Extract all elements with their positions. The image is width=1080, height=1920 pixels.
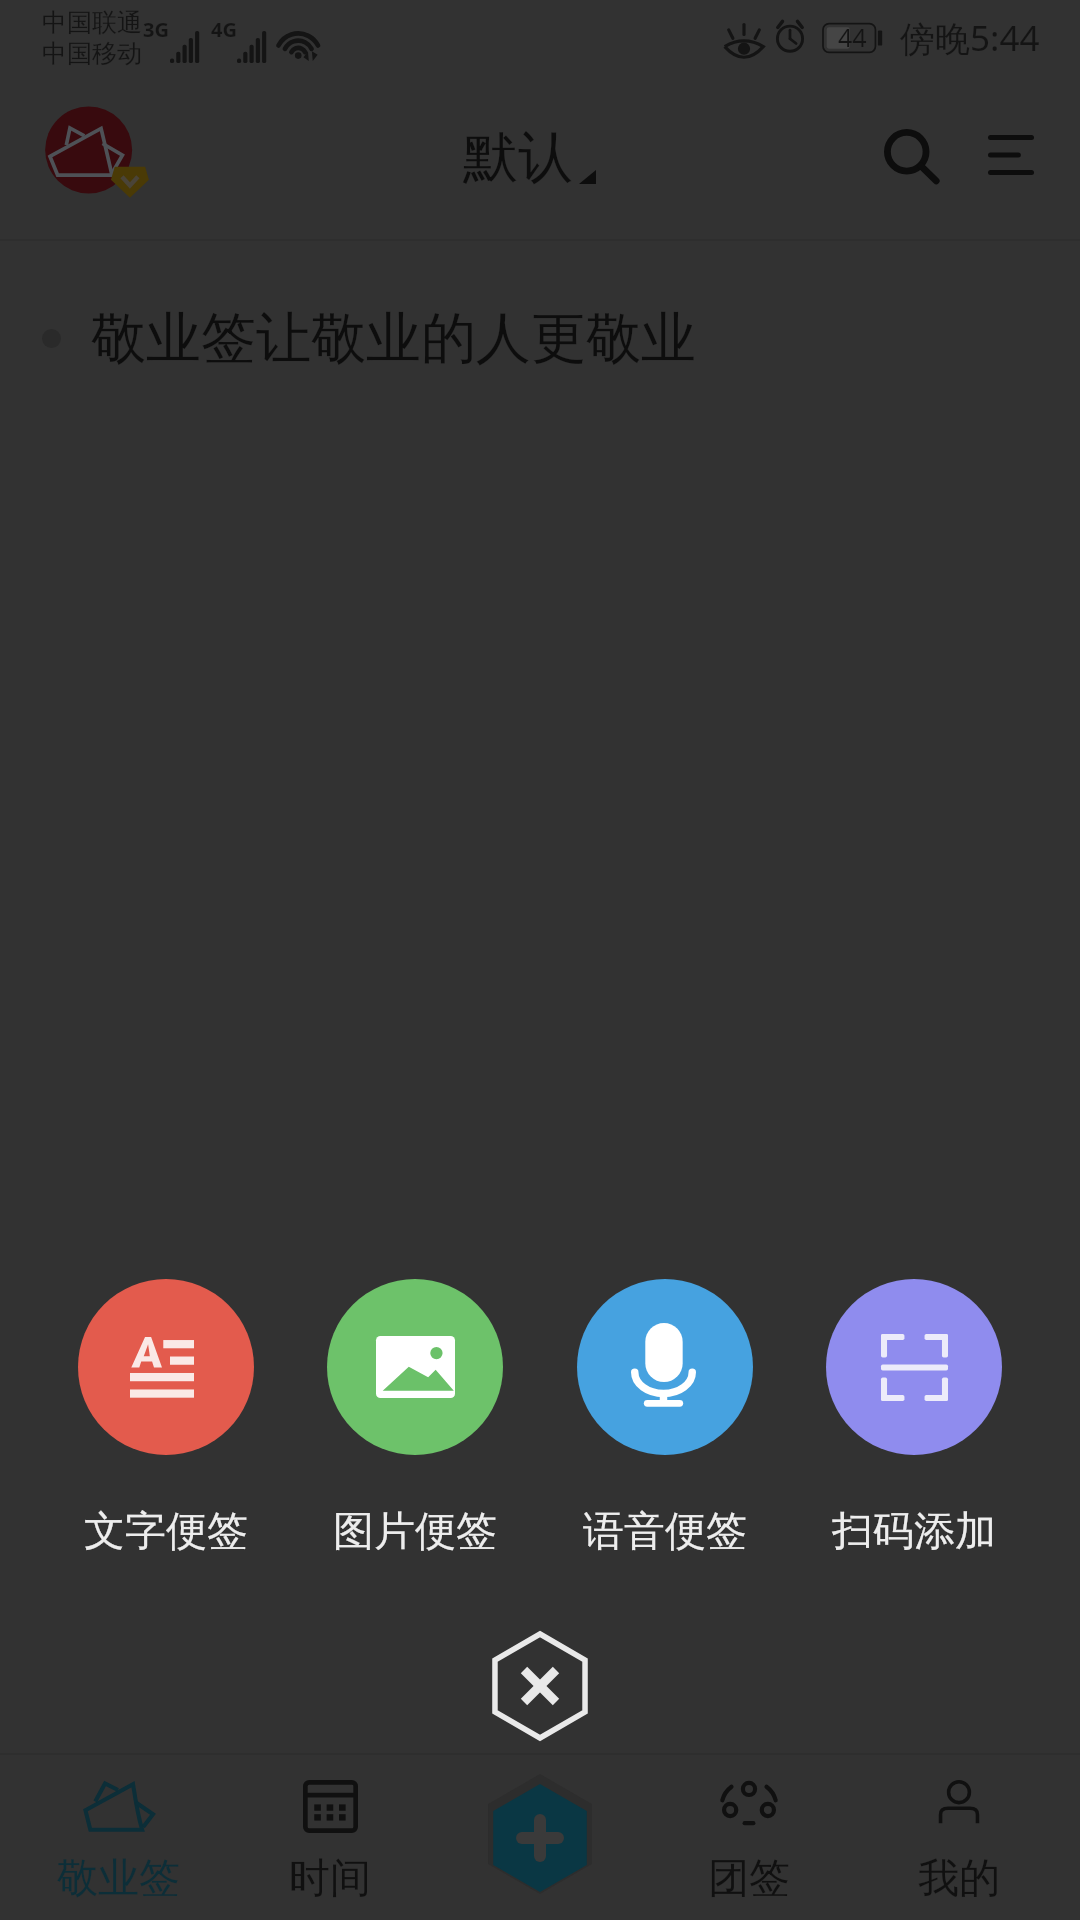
- button[interactable]: 敬业签: [18, 1755, 218, 1920]
- staticText: 中国联通: [42, 7, 142, 38]
- staticText: 语音便签: [583, 1506, 747, 1558]
- staticText: 3G: [143, 16, 169, 43]
- staticText: 扫码添加: [832, 1506, 996, 1558]
- staticText: 我的: [918, 1853, 1000, 1905]
- button[interactable]: 团签: [649, 1755, 849, 1920]
- staticText: 敬业签让敬业的人更敬业: [91, 304, 696, 373]
- button[interactable]: 时间: [230, 1755, 430, 1920]
- button[interactable]: Menu: [956, 100, 1066, 210]
- staticText: 44: [838, 20, 867, 54]
- staticText: 时间: [289, 1853, 371, 1905]
- button[interactable]: 语音便签: [555, 1279, 775, 1558]
- button[interactable]: Add: [475, 1773, 605, 1903]
- staticText: 敬业签: [57, 1853, 180, 1905]
- button[interactable]: Close: [480, 1626, 600, 1746]
- button[interactable]: Search: [858, 103, 968, 213]
- staticText: 图片便签: [333, 1506, 497, 1558]
- staticText: 傍晚5:44: [900, 14, 1040, 62]
- button[interactable]: Profile: [40, 105, 155, 220]
- staticText: 默认: [463, 123, 573, 192]
- staticText: 文字便签: [84, 1506, 248, 1558]
- staticText: 中国移动: [42, 38, 142, 69]
- button[interactable]: 扫码添加: [804, 1279, 1024, 1558]
- staticText: 团签: [708, 1853, 790, 1905]
- button[interactable]: 文字便签: [56, 1279, 276, 1558]
- staticText: 4G: [211, 16, 237, 43]
- button[interactable]: 图片便签: [305, 1279, 525, 1558]
- button[interactable]: 我的: [859, 1755, 1059, 1920]
